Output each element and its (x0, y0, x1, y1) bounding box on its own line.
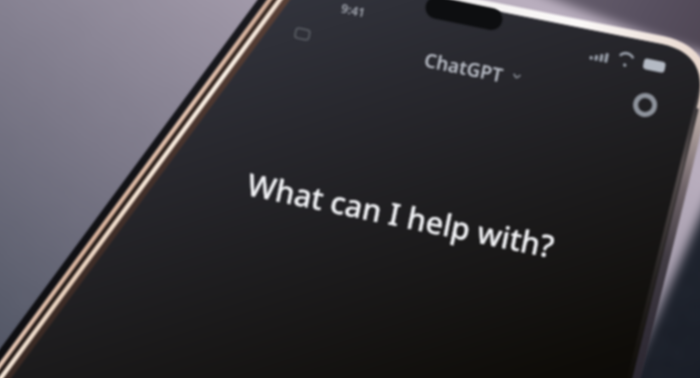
button[interactable] (0, 0, 700, 378)
